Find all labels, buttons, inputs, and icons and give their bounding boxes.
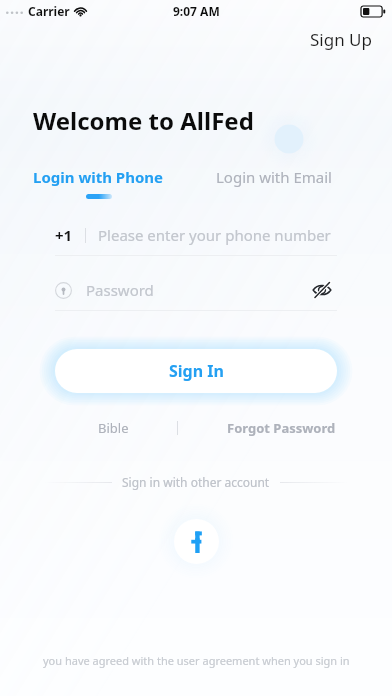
button[interactable]: Sign In bbox=[55, 349, 337, 393]
staticText: +1 bbox=[55, 225, 73, 245]
button[interactable]: +1 bbox=[55, 215, 337, 255]
staticText: Sign in with other account bbox=[122, 474, 270, 490]
staticText: Login with Phone bbox=[33, 167, 164, 187]
button[interactable]: Sign in with Facebook bbox=[174, 519, 219, 564]
staticText: Forgot Password bbox=[227, 419, 336, 437]
staticText: Carrier bbox=[28, 3, 70, 19]
button[interactable]: Login with Phone bbox=[26, 165, 171, 201]
staticText: you have agreed with the user agreement … bbox=[43, 653, 350, 668]
button[interactable]: Password bbox=[55, 270, 337, 310]
button[interactable]: Forgot Password bbox=[221, 415, 342, 441]
staticText: Password bbox=[86, 280, 154, 300]
staticText: Please enter your phone number bbox=[98, 225, 331, 245]
button[interactable]: Bible bbox=[92, 415, 135, 441]
staticText: Login with Email bbox=[216, 167, 332, 187]
staticText: Welcome to AllFed bbox=[33, 104, 254, 137]
staticText: Sign Up bbox=[310, 28, 372, 51]
button[interactable]: Login with Email bbox=[210, 165, 338, 189]
button[interactable]: Show password bbox=[307, 275, 337, 305]
staticText: 9:07 AM bbox=[173, 3, 220, 19]
staticText: Bible bbox=[98, 419, 129, 437]
button[interactable]: Sign Up bbox=[304, 24, 378, 55]
staticText: Sign In bbox=[169, 360, 224, 382]
